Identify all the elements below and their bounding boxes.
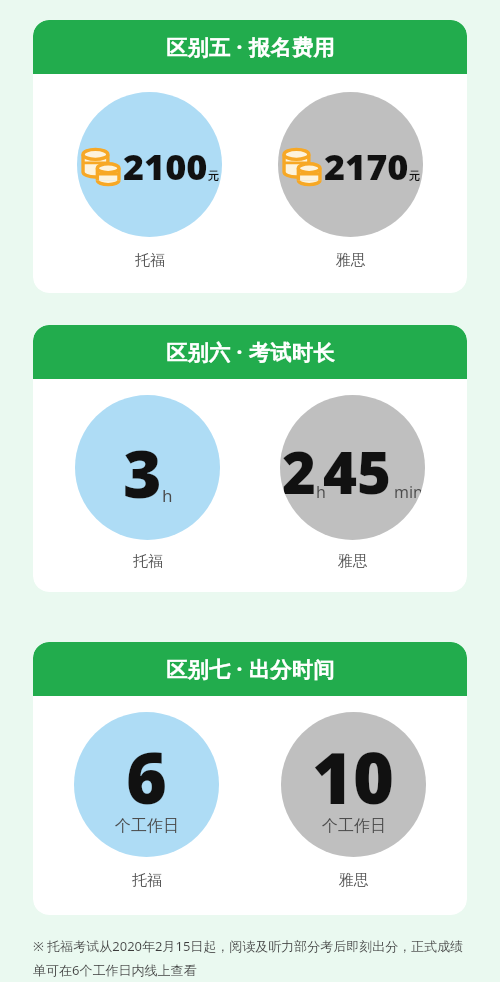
staticText: 45 [323, 432, 391, 511]
staticText: 托福 [135, 251, 165, 270]
button[interactable]: 区别五 · 报名费用 [33, 20, 467, 74]
button[interactable]: 区别七 · 出分时间 [33, 642, 467, 696]
staticText: 雅思 [336, 251, 366, 270]
staticText: 6 [126, 729, 168, 824]
staticText: 元 [208, 169, 219, 183]
staticText: 元 [409, 169, 420, 183]
staticText: h [162, 484, 173, 507]
staticText: 10 [312, 729, 395, 824]
staticText: 个工作日 [115, 816, 179, 836]
staticText: 区别七 · 出分时间 [166, 655, 335, 684]
staticText: 3 [123, 427, 162, 517]
button[interactable]: 区别六 · 考试时长 [33, 325, 467, 379]
staticText: 托福 [133, 552, 163, 571]
staticText: ※ 托福考试从2020年2月15日起，阅读及听力部分考后即刻出分，正式成绩单可在… [33, 937, 467, 979]
staticText: 2170 [324, 142, 409, 191]
staticText: 雅思 [338, 552, 368, 571]
staticText: 个工作日 [322, 816, 386, 836]
staticText: 区别六 · 考试时长 [166, 338, 335, 367]
staticText: h [316, 481, 326, 503]
staticText: min [394, 481, 423, 503]
staticText: 2 [282, 432, 316, 511]
staticText: 区别五 · 报名费用 [166, 33, 335, 62]
staticText: 2100 [123, 142, 208, 191]
staticText: 雅思 [339, 871, 369, 890]
staticText: 托福 [132, 871, 162, 890]
